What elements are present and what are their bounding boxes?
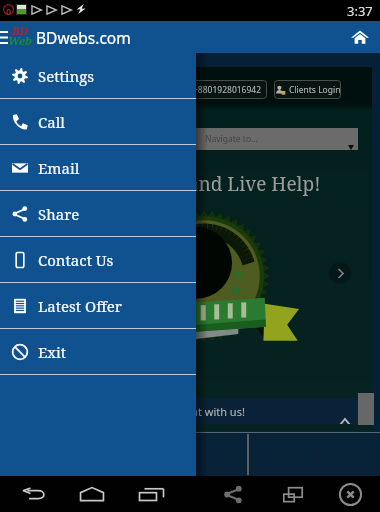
- button[interactable]: Multi window: [271, 476, 315, 512]
- staticText: 3:37: [347, 2, 373, 20]
- button[interactable]: Close: [328, 476, 372, 512]
- staticText: Hosting and Live Help!: [113, 171, 321, 197]
- button[interactable]: Email: [0, 145, 196, 190]
- staticText: Exit: [38, 342, 67, 362]
- staticText: Clients Login: [289, 84, 341, 96]
- staticText: Email: [38, 158, 80, 178]
- button[interactable]: Recent apps: [129, 476, 173, 512]
- staticText: Webs: [8, 33, 34, 59]
- staticText: 0: [6, 5, 12, 17]
- button[interactable]: Home: [346, 23, 374, 51]
- staticText: Share: [38, 204, 80, 224]
- staticText: Chat with us!: [178, 404, 245, 419]
- button[interactable]: Next slide: [329, 262, 351, 284]
- button[interactable]: Navigate to...: [168, 128, 358, 150]
- button[interactable]: Latest Offer: [0, 283, 196, 328]
- button[interactable]: Share: [0, 191, 196, 236]
- button[interactable]: Settings: [0, 53, 196, 98]
- button[interactable]: Share: [211, 476, 255, 512]
- staticText: Call: [38, 112, 65, 132]
- staticText: BD: [12, 23, 28, 38]
- button[interactable]: Exit: [0, 329, 196, 374]
- button[interactable]: Call: [0, 99, 196, 144]
- button[interactable]: Contact Us: [0, 237, 196, 282]
- staticText: Latest Offer: [38, 296, 122, 316]
- staticText: BDwebs.com: [36, 27, 131, 48]
- button[interactable]: +8801928016942: [188, 80, 267, 99]
- button[interactable]: Home: [70, 476, 114, 512]
- button[interactable]: Back: [12, 476, 56, 512]
- staticText: Settings: [38, 66, 95, 86]
- staticText: Contact Us: [38, 250, 114, 270]
- button[interactable]: Clients Login: [274, 80, 341, 99]
- staticText: +8801928016942: [193, 84, 262, 96]
- button[interactable]: Open navigation drawer: [0, 27, 14, 47]
- button[interactable]: Chat with us!: [110, 398, 358, 424]
- staticText: Navigate to...: [205, 133, 258, 145]
